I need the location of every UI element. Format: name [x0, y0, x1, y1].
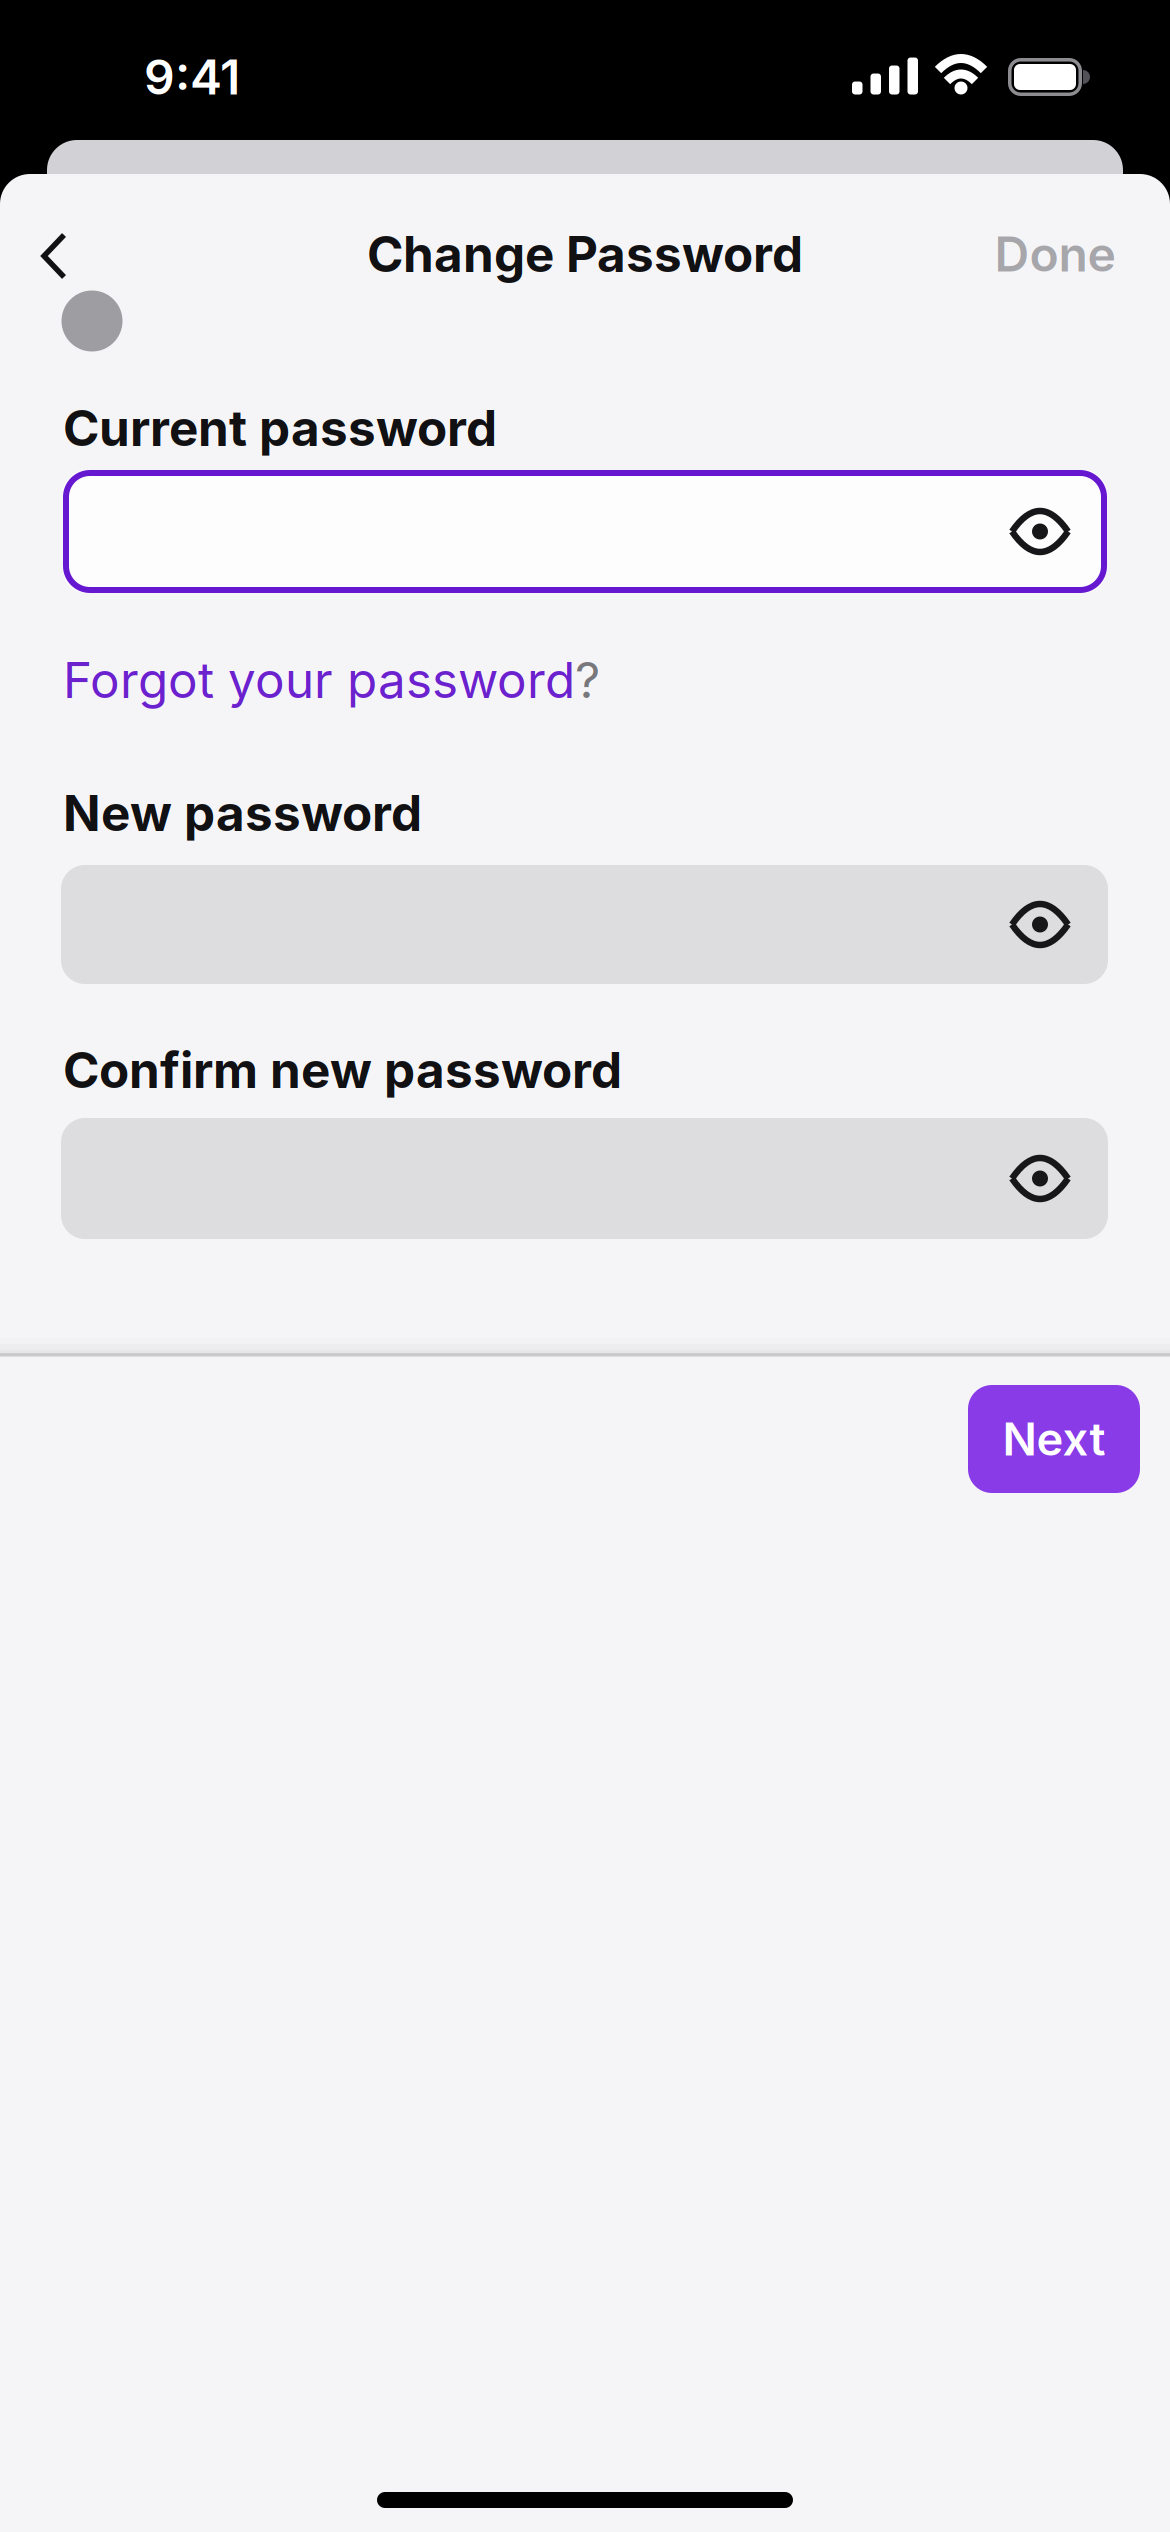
staticText: Next — [1002, 1412, 1105, 1466]
staticText: New password — [63, 784, 422, 842]
button[interactable]: Show password — [1000, 1138, 1080, 1218]
button[interactable]: Back — [19, 221, 89, 291]
staticText: Change Password — [367, 225, 803, 283]
staticText: Done — [994, 226, 1115, 282]
staticText: Current password — [63, 399, 497, 457]
button[interactable]: Next — [968, 1385, 1140, 1493]
staticText: 9:41 — [144, 49, 240, 105]
button[interactable]: Done — [994, 226, 1115, 282]
staticText: Forgot your password — [63, 651, 575, 709]
button[interactable]: Show password — [1000, 491, 1080, 571]
button[interactable]: Forgot your password — [63, 651, 600, 709]
staticText: Confirm new password — [63, 1041, 622, 1099]
button[interactable]: Show password — [1000, 884, 1080, 964]
staticText: ? — [575, 651, 600, 709]
